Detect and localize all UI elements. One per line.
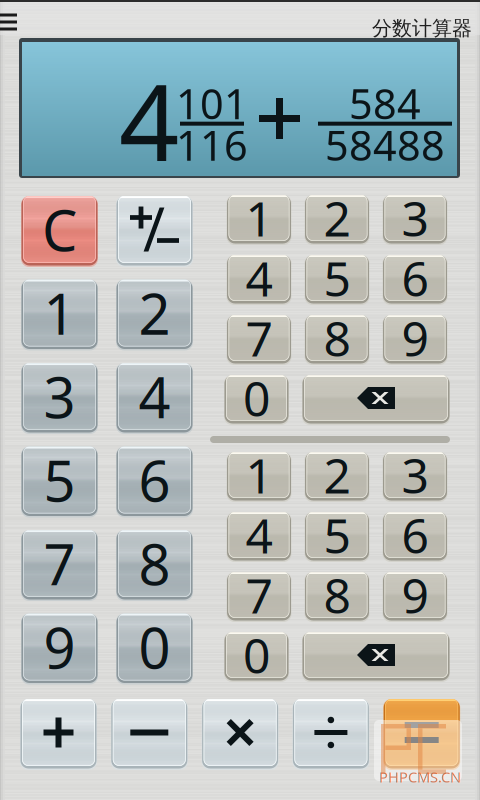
staticText: C — [42, 192, 77, 267]
button[interactable]: 9 — [21, 613, 98, 684]
staticText: 9 — [401, 563, 428, 627]
staticText: 2 — [323, 443, 350, 507]
staticText: 5 — [323, 503, 350, 567]
button[interactable]: 7 — [21, 530, 98, 601]
button[interactable] — [383, 699, 460, 770]
staticText: 2 — [323, 186, 350, 250]
button[interactable]: 5 — [304, 512, 369, 562]
button[interactable]: 0 — [116, 613, 193, 684]
staticText: 101 — [176, 76, 248, 131]
button[interactable]: 0 — [224, 375, 289, 425]
staticText: 5 — [43, 443, 75, 517]
button[interactable]: 5 — [304, 255, 369, 305]
staticText: 6 — [401, 503, 428, 567]
staticText: 0 — [243, 623, 270, 687]
staticText: 0 — [243, 366, 270, 430]
staticText: 4 — [138, 359, 170, 434]
button[interactable]: 3 — [21, 363, 98, 434]
button[interactable]: 4 — [116, 363, 193, 434]
staticText: 分数计算器 — [372, 16, 472, 41]
staticText: 1 — [43, 276, 75, 350]
staticText: 4 — [245, 246, 272, 310]
staticText: 58488 — [325, 117, 445, 172]
button[interactable]: 7 — [226, 572, 291, 622]
button[interactable]: 3 — [382, 195, 447, 245]
staticText: 3 — [401, 443, 428, 507]
button[interactable]: 4 — [226, 255, 291, 305]
button[interactable]: 6 — [116, 446, 193, 517]
staticText: 4 — [119, 51, 179, 190]
button[interactable]: 8 — [304, 572, 369, 622]
button[interactable]: Menu — [0, 11, 22, 33]
staticText: 7 — [43, 526, 75, 601]
staticText: 1 — [245, 443, 272, 507]
button[interactable]: 5 — [21, 446, 98, 517]
staticText: 3 — [43, 359, 75, 434]
button[interactable]: 2 — [304, 452, 369, 502]
button[interactable] — [20, 699, 97, 770]
button[interactable]: 2 — [116, 279, 193, 350]
staticText: 8 — [323, 563, 350, 627]
staticText: PHPCMS.CN — [379, 767, 461, 786]
staticText: 0 — [138, 610, 170, 684]
button[interactable]: 3 — [382, 452, 447, 502]
button[interactable] — [302, 375, 450, 425]
button[interactable]: 1 — [226, 195, 291, 245]
button[interactable]: 6 — [382, 255, 447, 305]
staticText: 9 — [43, 610, 75, 684]
staticText: 7 — [245, 306, 272, 370]
button[interactable]: 1 — [21, 279, 98, 350]
button[interactable] — [116, 196, 193, 267]
button[interactable] — [111, 699, 188, 770]
button[interactable] — [302, 632, 450, 682]
button[interactable]: 9 — [382, 572, 447, 622]
staticText: 9 — [401, 306, 428, 370]
button[interactable]: 9 — [382, 315, 447, 365]
button[interactable]: 1 — [226, 452, 291, 502]
button[interactable]: 0 — [224, 632, 289, 682]
button[interactable]: 4 — [226, 512, 291, 562]
button[interactable]: 2 — [304, 195, 369, 245]
button[interactable]: 7 — [226, 315, 291, 365]
button[interactable]: 8 — [116, 530, 193, 601]
staticText: 2 — [138, 276, 170, 350]
button[interactable]: C — [21, 196, 98, 267]
staticText: 7 — [245, 563, 272, 627]
button[interactable] — [292, 699, 369, 770]
staticText: 8 — [323, 306, 350, 370]
staticText: 5 — [323, 246, 350, 310]
staticText: 116 — [176, 117, 248, 172]
staticText: 584 — [349, 76, 421, 131]
button[interactable] — [202, 699, 279, 770]
staticText: 4 — [245, 503, 272, 567]
staticText: 8 — [138, 526, 170, 601]
staticText: 1 — [245, 186, 272, 250]
staticText: 6 — [401, 246, 428, 310]
button[interactable]: 8 — [304, 315, 369, 365]
staticText: 3 — [401, 186, 428, 250]
button[interactable]: 6 — [382, 512, 447, 562]
staticText: 6 — [138, 443, 170, 517]
